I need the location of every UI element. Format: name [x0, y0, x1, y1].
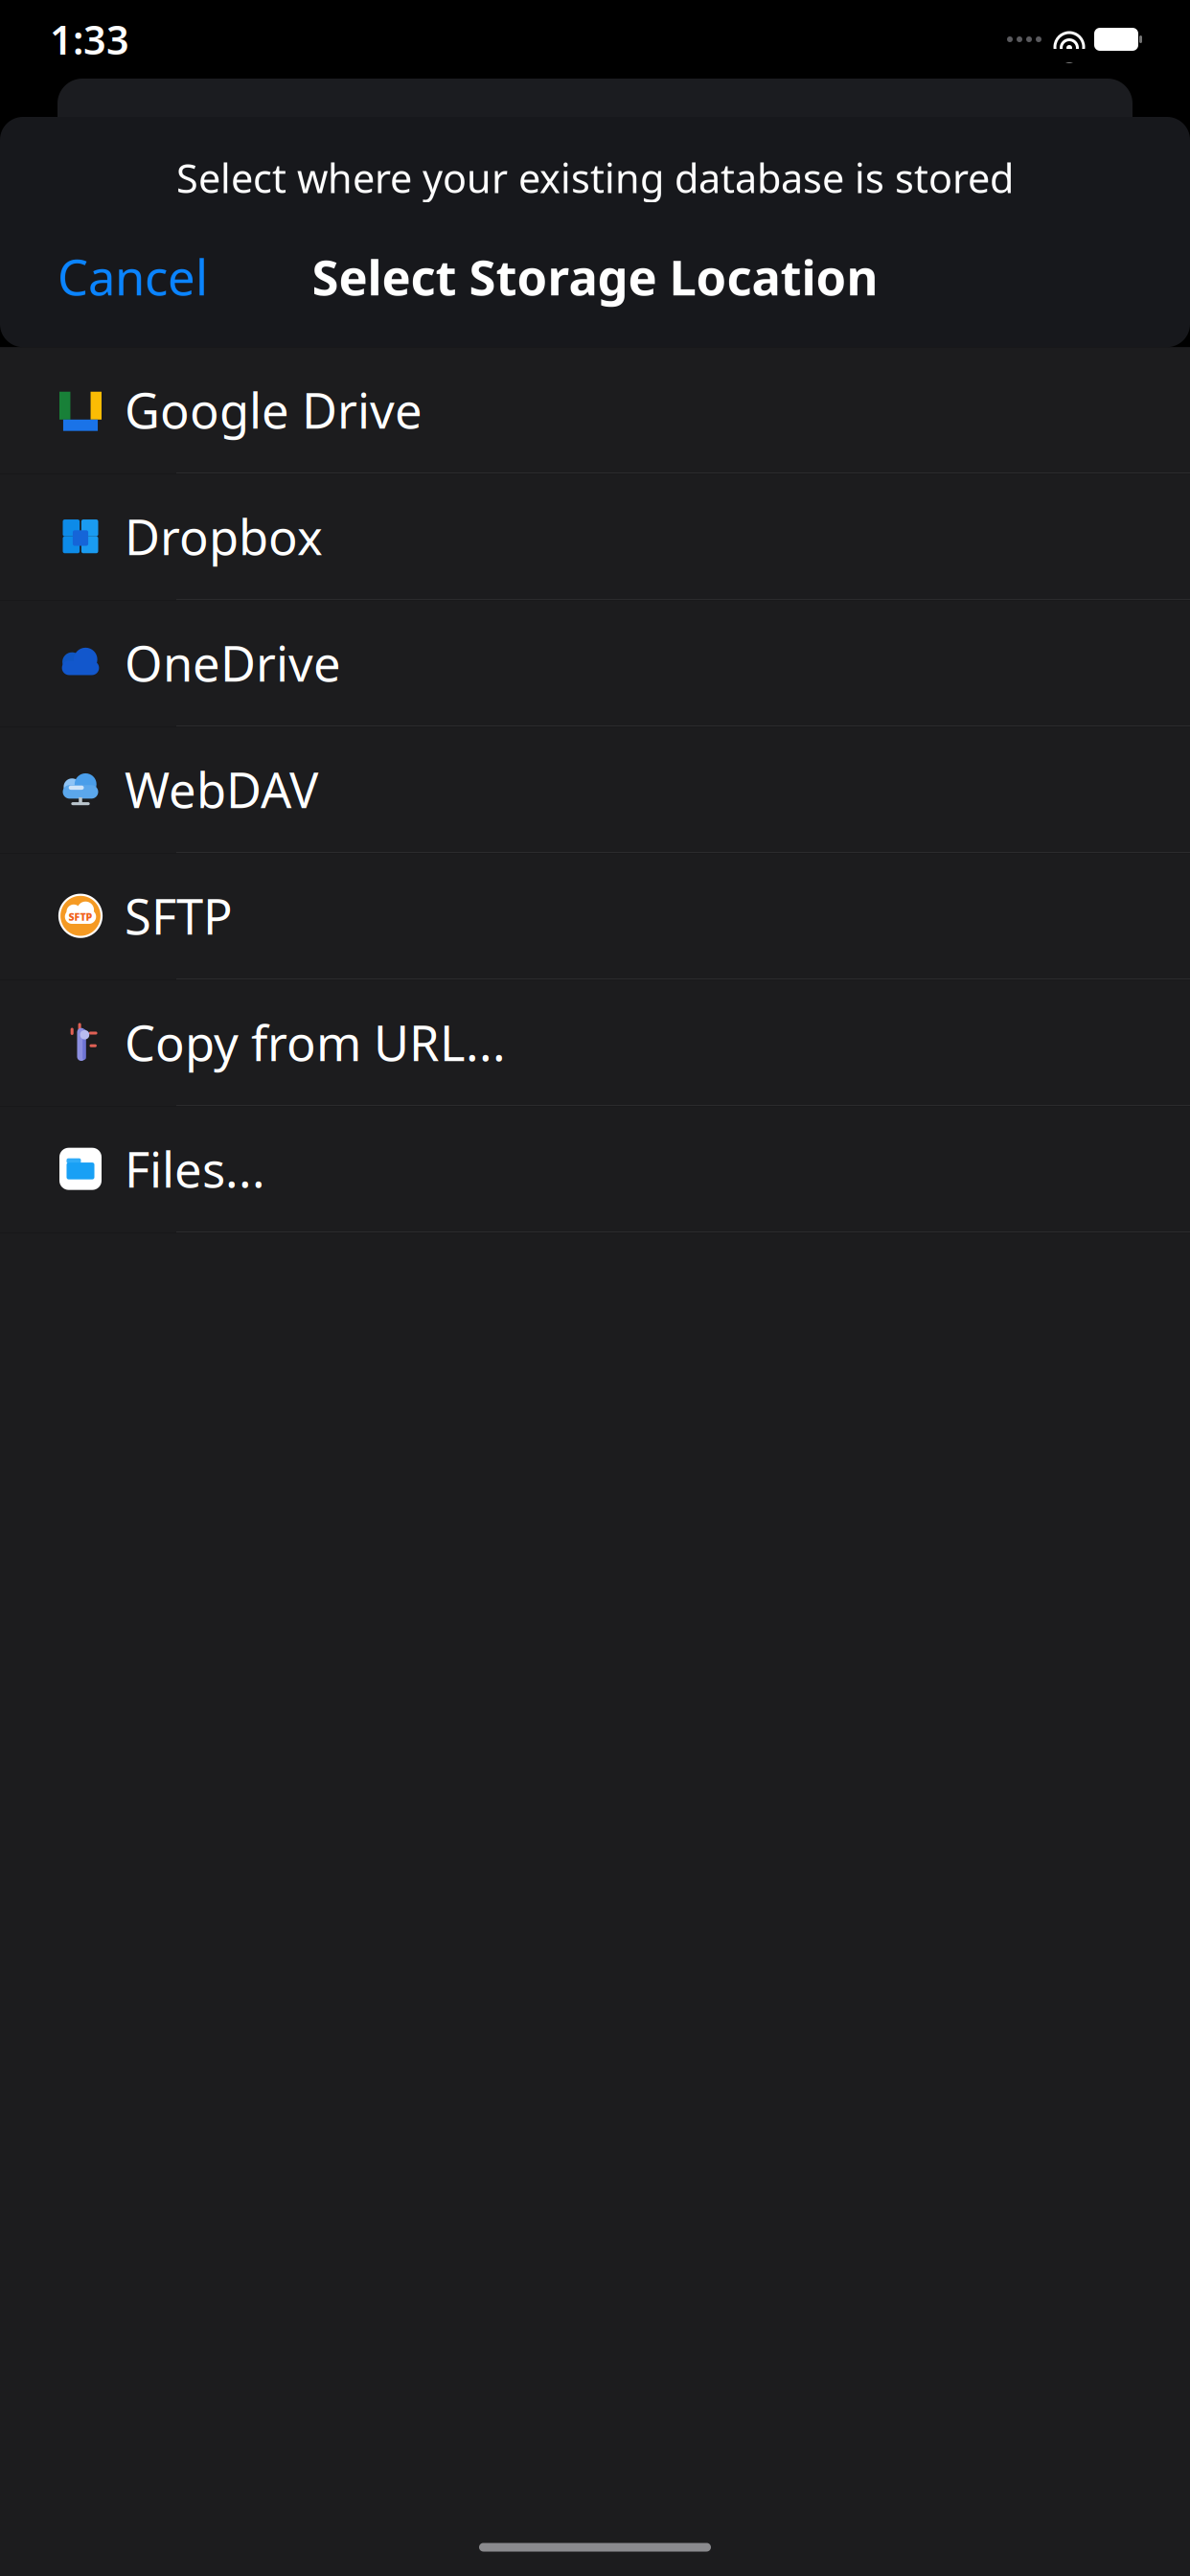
button[interactable]: OneDrive	[0, 600, 1190, 727]
staticText: Select where your existing database is s…	[176, 151, 1014, 204]
staticText: Google Drive	[125, 378, 423, 442]
staticText: SFTP	[125, 884, 233, 948]
button[interactable]: Google Drive	[0, 347, 1190, 474]
staticText: SFTP	[69, 910, 92, 924]
staticText: Copy from URL...	[125, 1010, 506, 1075]
staticText: Files...	[125, 1137, 265, 1201]
button[interactable]: WebDAV	[0, 727, 1190, 853]
staticText: Select Storage Location	[312, 244, 878, 309]
staticText: WebDAV	[125, 757, 318, 822]
button[interactable]: Dropbox	[0, 474, 1190, 600]
staticText: OneDrive	[125, 631, 341, 695]
button[interactable]: SFTP	[0, 853, 1190, 980]
staticText: Cancel	[57, 244, 208, 309]
button[interactable]: Files...	[0, 1106, 1190, 1233]
staticText: 1:33	[50, 13, 129, 66]
button[interactable]: Copy from URL...	[0, 980, 1190, 1106]
staticText: Dropbox	[125, 504, 323, 569]
button[interactable]: Cancel	[48, 233, 217, 320]
